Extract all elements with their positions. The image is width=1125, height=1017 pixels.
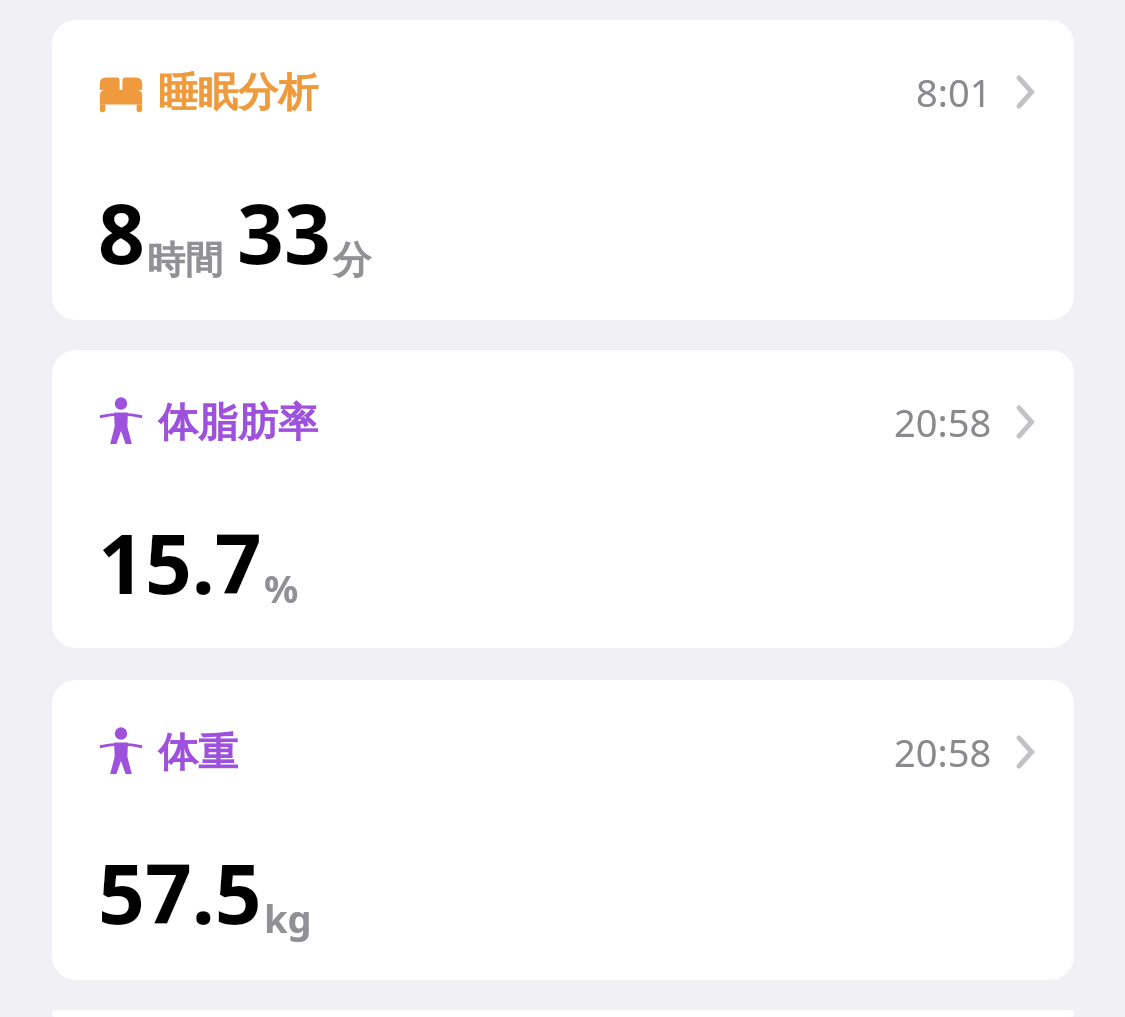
button[interactable]: 体脂肪率 <box>52 350 1074 648</box>
other: Open 体重 details <box>1010 730 1040 774</box>
button[interactable]: 睡眠分析 <box>52 20 1074 320</box>
staticText: kg <box>264 892 312 944</box>
staticText: 20:58 <box>894 396 992 448</box>
staticText: 8:01 <box>916 66 992 118</box>
staticText: 分 <box>333 236 371 284</box>
staticText: 33 <box>237 176 331 288</box>
staticText: 8 <box>98 176 145 288</box>
staticText: 睡眠分析 <box>158 67 318 117</box>
staticText: 57.5 <box>98 836 262 948</box>
staticText: 時間 <box>147 236 223 284</box>
other: Open 体脂肪率 details <box>1010 400 1040 444</box>
button[interactable]: 体重 <box>52 680 1074 980</box>
staticText: 体脂肪率 <box>158 397 318 447</box>
staticText: % <box>264 562 299 614</box>
other: Open 睡眠分析 details <box>1010 70 1040 114</box>
staticText: 20:58 <box>894 726 992 778</box>
staticText: 15.7 <box>98 506 262 618</box>
staticText: 体重 <box>158 727 238 777</box>
